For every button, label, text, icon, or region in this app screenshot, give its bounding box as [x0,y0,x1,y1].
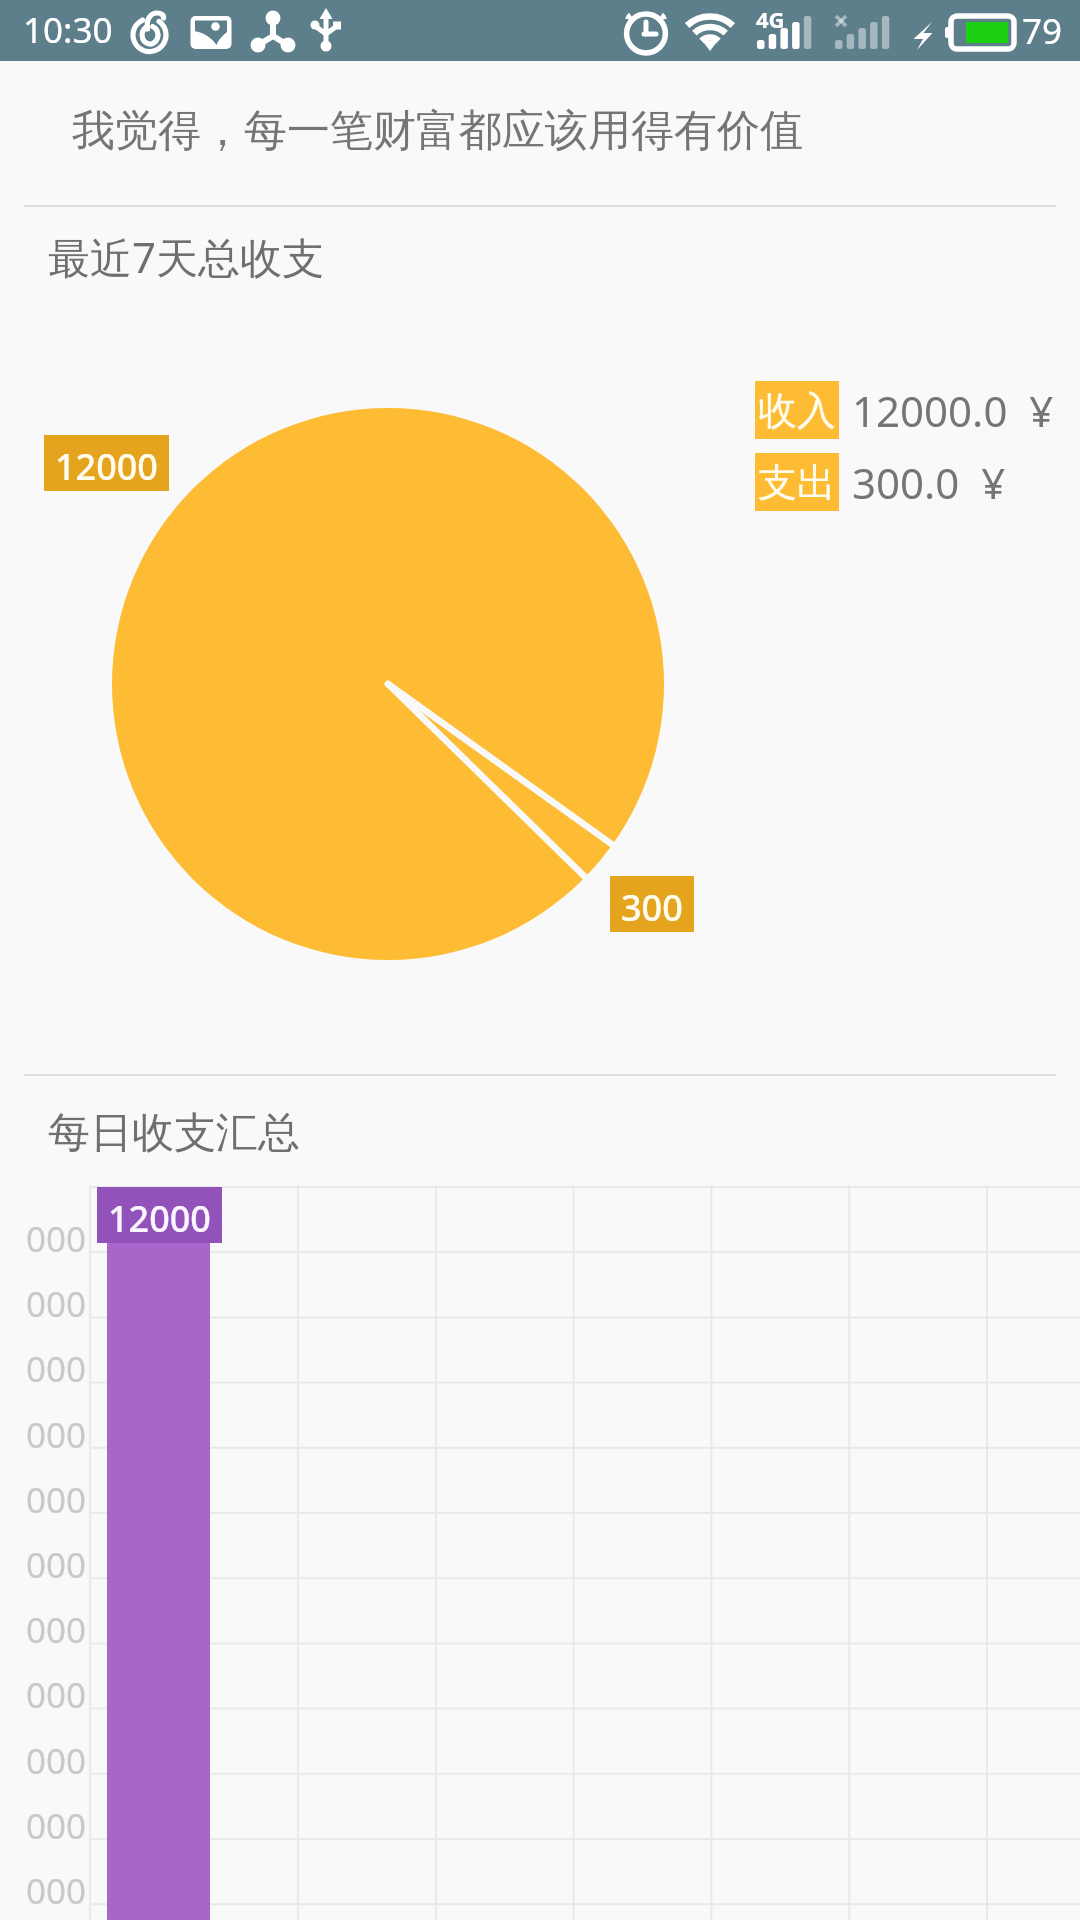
staticText: 10:30 [23,6,113,54]
button[interactable]: 我觉得，每一笔财富都应该用得有价值 [0,61,1080,205]
staticText: 000 [26,1215,87,1263]
staticText: 000 [26,1802,87,1850]
staticText: 我觉得，每一笔财富都应该用得有价值 [72,104,803,158]
staticText: 000 [26,1411,87,1459]
staticText: 4G [756,4,785,34]
staticText: 每日收支汇总 [48,1107,300,1160]
staticText: 最近7天总收支 [48,228,325,285]
staticText: 000 [26,1606,87,1654]
staticText: 12000.0 ¥ [852,382,1054,439]
staticText: 000 [26,1867,87,1915]
staticText: 000 [26,1345,87,1393]
staticText: 支出 [758,458,836,507]
staticText: 300 [621,883,683,932]
button[interactable]: 最近7天总收支 [0,207,1080,1074]
staticText: 000 [26,1476,87,1524]
staticText: 收入 [758,386,836,435]
staticText: 79 [1022,7,1063,55]
staticText: 000 [26,1737,87,1785]
staticText: 12000 [108,1194,211,1243]
staticText: 000 [26,1671,87,1719]
staticText: 000 [26,1280,87,1328]
staticText: 12000 [55,442,158,491]
staticText: 000 [26,1541,87,1589]
staticText: 300.0 ¥ [852,454,1006,511]
button[interactable]: 每日收支汇总 [0,1076,1080,1920]
